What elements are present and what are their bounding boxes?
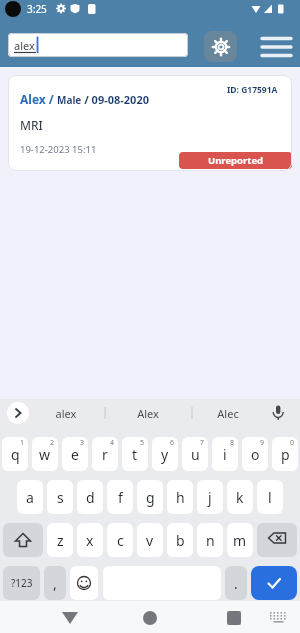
staticText: 7 xyxy=(200,438,205,448)
button[interactable]: p xyxy=(272,437,298,471)
button[interactable] xyxy=(266,609,292,629)
staticText: m xyxy=(233,531,247,550)
button[interactable]: o xyxy=(242,437,268,471)
button[interactable]: u xyxy=(182,437,208,471)
button[interactable]: x xyxy=(77,523,103,557)
button[interactable]: c xyxy=(107,523,133,557)
button[interactable]: t xyxy=(122,437,148,471)
button[interactable]: z xyxy=(47,523,73,557)
staticText: r xyxy=(102,445,108,464)
staticText: z xyxy=(57,531,64,550)
staticText: 3:25 xyxy=(27,2,47,16)
staticText: a xyxy=(26,488,34,507)
staticText: x xyxy=(86,531,94,550)
button[interactable]: w xyxy=(32,437,58,471)
button[interactable]: a xyxy=(17,480,43,514)
staticText: 1 xyxy=(20,438,25,448)
staticText: e xyxy=(71,445,79,464)
button[interactable]: b xyxy=(167,523,193,557)
button[interactable]: r xyxy=(92,437,118,471)
button[interactable]: n xyxy=(197,523,223,557)
button[interactable]: ID: G17591A xyxy=(8,75,292,171)
button[interactable]: m xyxy=(227,523,253,557)
button[interactable]: h xyxy=(167,480,193,514)
staticText: Alex / Male / 09-08-2020 xyxy=(20,91,149,107)
staticText: o xyxy=(251,445,260,464)
staticText: 19-12-2023 15:11 xyxy=(20,143,97,156)
button[interactable] xyxy=(251,566,297,600)
staticText: p xyxy=(281,445,290,464)
button[interactable]: g xyxy=(137,480,163,514)
button[interactable] xyxy=(3,523,43,557)
staticText: w xyxy=(39,445,51,464)
button[interactable]: Alex xyxy=(130,406,166,421)
button[interactable]: i xyxy=(212,437,238,471)
staticText: h xyxy=(176,488,185,507)
button[interactable]: f xyxy=(107,480,133,514)
staticText: v xyxy=(146,531,154,550)
staticText: g xyxy=(146,488,155,507)
button[interactable] xyxy=(268,403,288,423)
staticText: b xyxy=(176,531,185,550)
button[interactable]: alex xyxy=(8,33,188,57)
staticText: 0 xyxy=(290,438,295,448)
staticText: u xyxy=(191,445,200,464)
staticText: Unreported xyxy=(208,154,264,167)
staticText: i xyxy=(223,445,227,464)
button[interactable] xyxy=(204,31,237,62)
button[interactable]: Alec xyxy=(210,406,246,421)
button[interactable]: . xyxy=(225,566,247,600)
staticText: , xyxy=(53,574,57,593)
staticText: 3 xyxy=(80,438,85,448)
button[interactable] xyxy=(134,605,166,629)
staticText: j xyxy=(208,488,212,507)
staticText: ID: G17591A xyxy=(227,84,278,96)
staticText: k xyxy=(236,488,244,507)
button[interactable] xyxy=(218,605,250,629)
staticText: 9 xyxy=(260,438,265,448)
button[interactable] xyxy=(260,35,294,61)
button[interactable]: e xyxy=(62,437,88,471)
staticText: f xyxy=(118,488,123,507)
staticText: n xyxy=(206,531,215,550)
button[interactable]: s xyxy=(47,480,73,514)
staticText: 8 xyxy=(230,438,235,448)
button[interactable] xyxy=(54,605,86,629)
staticText: d xyxy=(86,488,95,507)
staticText: 2 xyxy=(50,438,55,448)
button[interactable]: q xyxy=(2,437,28,471)
button[interactable]: j xyxy=(197,480,223,514)
button[interactable]: d xyxy=(77,480,103,514)
button[interactable]: alex xyxy=(48,406,84,421)
staticText: 5 xyxy=(140,438,145,448)
button[interactable] xyxy=(70,566,98,600)
staticText: 6 xyxy=(170,438,175,448)
staticText: c xyxy=(117,531,124,550)
button[interactable]: v xyxy=(137,523,163,557)
button[interactable]: k xyxy=(227,480,253,514)
staticText: alex xyxy=(14,38,35,53)
button[interactable]: ?123 xyxy=(3,566,40,600)
button[interactable]: , xyxy=(44,566,66,600)
staticText: 4 xyxy=(110,438,115,448)
staticText: . xyxy=(234,574,238,593)
button[interactable] xyxy=(7,402,29,424)
staticText: l xyxy=(268,488,272,507)
staticText: ?123 xyxy=(11,576,33,590)
button[interactable] xyxy=(257,523,297,557)
button[interactable]: y xyxy=(152,437,178,471)
staticText: t xyxy=(132,445,138,464)
button[interactable]: l xyxy=(257,480,283,514)
staticText: y xyxy=(161,445,169,464)
staticText: q xyxy=(11,445,20,464)
staticText: s xyxy=(57,488,64,507)
staticText: MRI xyxy=(20,117,43,133)
button[interactable]: Unreported xyxy=(179,152,292,169)
